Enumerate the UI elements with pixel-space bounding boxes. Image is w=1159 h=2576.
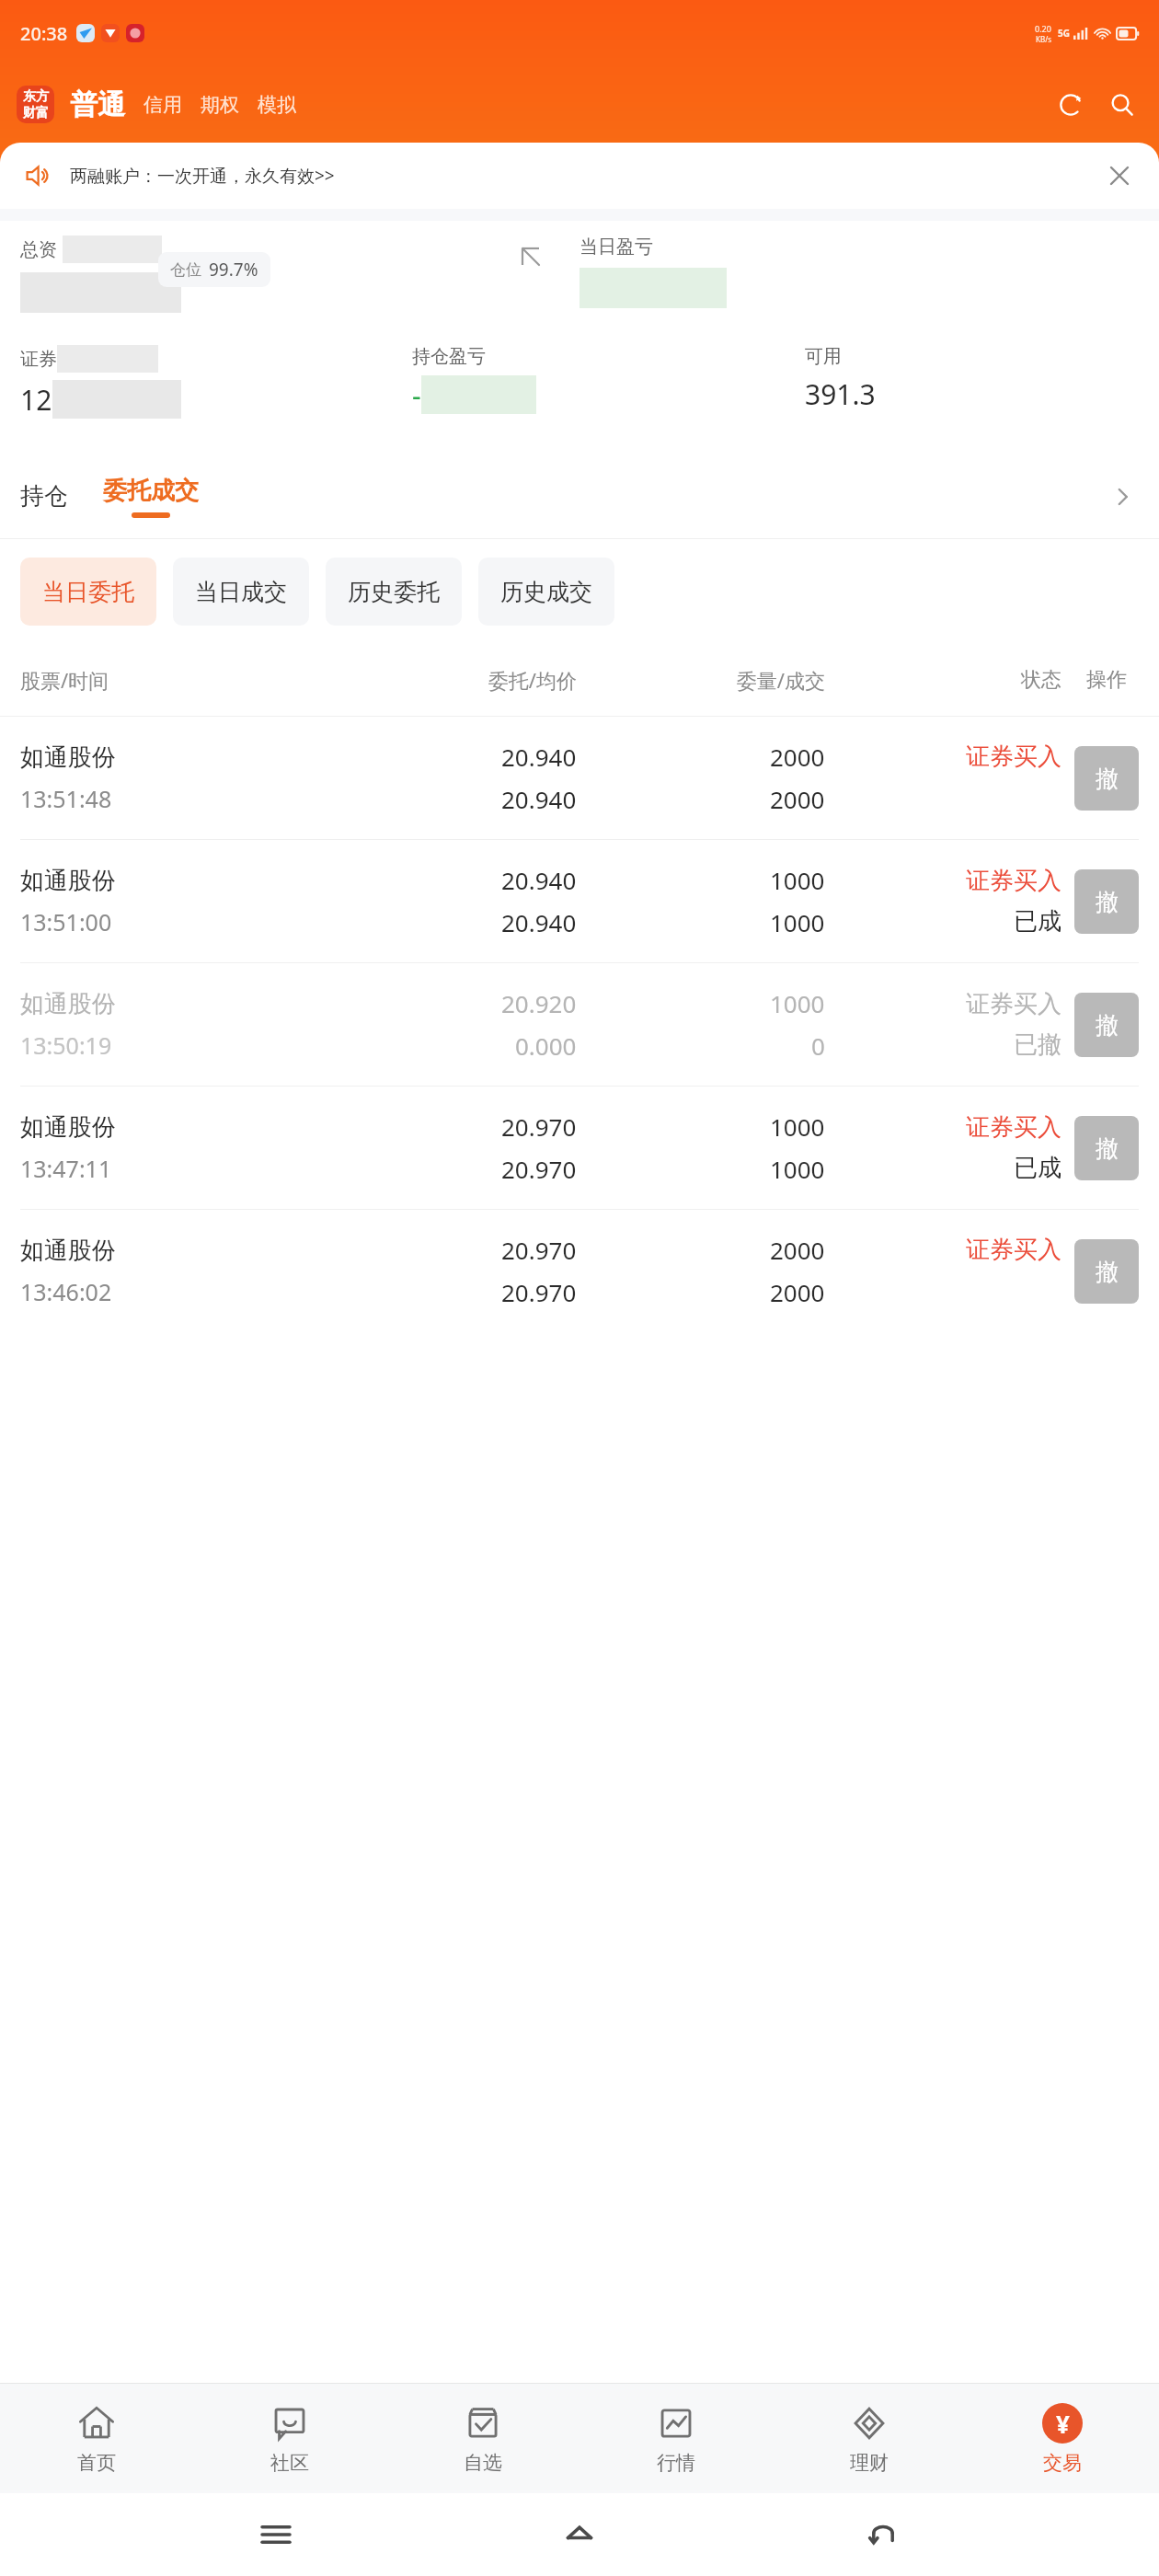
staticText: 操作	[1086, 667, 1127, 693]
staticText: 行情	[657, 2451, 695, 2475]
button[interactable]: 历史委托	[326, 558, 462, 626]
staticText: 如通股份	[20, 989, 116, 1019]
staticText: 撤	[1096, 1011, 1119, 1040]
staticText: 0	[811, 1029, 825, 1062]
button[interactable]: 期权	[201, 93, 239, 117]
staticText: 股票/时间	[20, 666, 316, 694]
staticText: 仓位	[170, 260, 201, 280]
staticText: 状态	[825, 667, 1061, 693]
button[interactable]: 如通股份	[0, 840, 1159, 962]
staticText: 证券买入	[966, 1112, 1061, 1143]
staticText: 99.7%	[209, 258, 258, 282]
staticText: 0.000	[515, 1029, 577, 1062]
staticText: 撤	[1096, 1134, 1119, 1163]
staticText: 当日成交	[195, 578, 287, 606]
staticText: 20.940	[501, 741, 577, 773]
staticText: 13:50:19	[20, 1029, 112, 1061]
staticText: 撤	[1096, 888, 1119, 916]
staticText: 1000	[770, 864, 825, 896]
button[interactable]: 持仓	[20, 481, 72, 512]
button[interactable]: 如通股份	[0, 1087, 1159, 1209]
button[interactable]: 刷新	[1050, 85, 1091, 125]
staticText: 1000	[770, 1110, 825, 1143]
staticText: 20.940	[501, 864, 577, 896]
staticText: 已撤	[1014, 1029, 1061, 1060]
button[interactable]: 展开	[517, 243, 545, 270]
staticText: 总资	[20, 238, 57, 261]
button[interactable]: 社区	[193, 2384, 386, 2493]
staticText: 期权	[201, 93, 239, 117]
button[interactable]: 撤	[1074, 993, 1139, 1057]
staticText: 证券	[20, 348, 57, 371]
button[interactable]: 历史成交	[478, 558, 614, 626]
staticText: 委托/均价	[316, 666, 577, 694]
staticText: 20.970	[501, 1276, 577, 1308]
staticText: 如通股份	[20, 742, 116, 773]
button[interactable]: 撤	[1074, 869, 1139, 934]
button[interactable]: 模拟	[258, 93, 296, 117]
button[interactable]: ¥	[966, 2384, 1159, 2493]
staticText: 2000	[770, 1234, 825, 1266]
staticText: 5G	[1058, 27, 1070, 40]
staticText: ¥	[1056, 2408, 1070, 2440]
button[interactable]: 信用	[143, 93, 182, 117]
button[interactable]: 两融账户：一次开通，永久有效>>	[0, 143, 1159, 209]
staticText: 社区	[270, 2451, 309, 2475]
staticText: 证券买入	[966, 989, 1061, 1019]
button[interactable]: 仓位	[158, 252, 270, 287]
button[interactable]: 委托成交	[103, 476, 199, 518]
staticText: 2000	[770, 783, 825, 815]
staticText: 1000	[770, 906, 825, 938]
button[interactable]: 撤	[1074, 1239, 1139, 1304]
staticText: 证券买入	[966, 1235, 1061, 1265]
button[interactable]: 如通股份	[0, 1210, 1159, 1332]
staticText: 20.970	[501, 1110, 577, 1143]
button[interactable]: 如通股份	[0, 717, 1159, 839]
button[interactable]: 主页	[552, 2507, 607, 2562]
button[interactable]: 返回	[855, 2507, 911, 2562]
staticText: 财富	[23, 105, 49, 121]
button[interactable]: 当日成交	[173, 558, 309, 626]
button[interactable]: 撤	[1074, 1116, 1139, 1180]
staticText: 两融账户：一次开通，永久有效>>	[70, 164, 335, 188]
button[interactable]: 撤	[1074, 746, 1139, 811]
staticText: 信用	[143, 93, 182, 117]
staticText: 撤	[1096, 1258, 1119, 1286]
staticText: 20.970	[501, 1153, 577, 1185]
staticText: 13:51:48	[20, 783, 112, 814]
button[interactable]: 最近任务	[248, 2507, 304, 2562]
staticText: 如通股份	[20, 866, 116, 896]
staticText: 首页	[77, 2451, 116, 2475]
staticText: 撤	[1096, 765, 1119, 793]
button[interactable]: 自选	[386, 2384, 579, 2493]
staticText: 交易	[1043, 2451, 1082, 2475]
staticText: 如通股份	[20, 1236, 116, 1266]
staticText: 1000	[770, 987, 825, 1019]
staticText: 模拟	[258, 93, 296, 117]
staticText: 证券买入	[966, 866, 1061, 896]
button[interactable]: 理财	[773, 2384, 966, 2493]
staticText: 20.940	[501, 783, 577, 815]
button[interactable]: 当日委托	[20, 558, 156, 626]
staticText: 13:46:02	[20, 1276, 112, 1307]
staticText: 持仓	[20, 481, 68, 512]
button[interactable]: 更多	[1106, 480, 1139, 513]
button[interactable]: 东方财富	[17, 86, 54, 123]
button[interactable]: 关闭	[1104, 160, 1135, 191]
button[interactable]: 搜索	[1102, 85, 1142, 125]
staticText: 2000	[770, 741, 825, 773]
staticText: 证券买入	[966, 742, 1061, 772]
staticText: 当日盈亏	[579, 236, 653, 259]
button[interactable]: 行情	[579, 2384, 773, 2493]
staticText: 13:51:00	[20, 906, 112, 937]
staticText: 东方	[23, 88, 49, 105]
staticText: 历史委托	[348, 578, 440, 606]
staticText: KB/s	[1036, 34, 1051, 44]
staticText: 可用	[805, 345, 842, 368]
button[interactable]: 首页	[0, 2384, 193, 2493]
staticText: 自选	[464, 2451, 502, 2475]
staticText: 20.920	[501, 987, 577, 1019]
button[interactable]: 普通	[70, 87, 125, 122]
staticText: 391.3	[805, 375, 876, 413]
button[interactable]: 如通股份	[0, 963, 1159, 1086]
